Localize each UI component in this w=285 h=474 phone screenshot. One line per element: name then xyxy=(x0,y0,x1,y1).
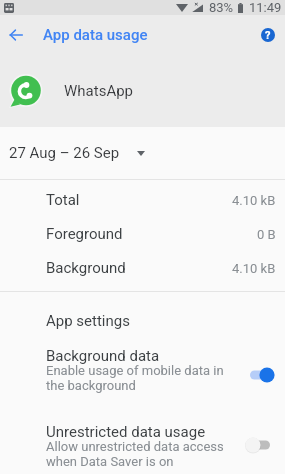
button[interactable]: Navigate up xyxy=(2,21,30,49)
staticText: Total xyxy=(46,191,80,209)
staticText: ? xyxy=(265,29,271,42)
staticText: 27 Aug – 26 Sep xyxy=(9,144,120,162)
staticText: 4.10 kB xyxy=(232,261,276,276)
staticText: 0 B xyxy=(257,227,276,242)
staticText: Background data xyxy=(46,347,160,365)
staticText: Unrestricted data usage xyxy=(46,423,206,441)
staticText: 4.10 kB xyxy=(232,193,276,208)
button[interactable]: Help xyxy=(255,22,281,48)
staticText: WhatsApp xyxy=(64,82,134,100)
button[interactable]: 27 Aug – 26 Sep xyxy=(0,127,285,179)
staticText: App data usage xyxy=(43,26,148,44)
staticText: Enable usage of mobile data in the backg… xyxy=(46,363,224,393)
staticText: 11:49 xyxy=(249,0,282,15)
staticText: 83% xyxy=(209,0,234,15)
button[interactable]: Unrestricted data usage xyxy=(0,420,285,474)
staticText: Background xyxy=(46,259,126,277)
button[interactable]: Background data xyxy=(0,344,285,407)
staticText: App settings xyxy=(46,312,130,330)
staticText: Foreground xyxy=(46,225,123,243)
staticText: Allow unrestricted data access when Data… xyxy=(46,439,224,469)
